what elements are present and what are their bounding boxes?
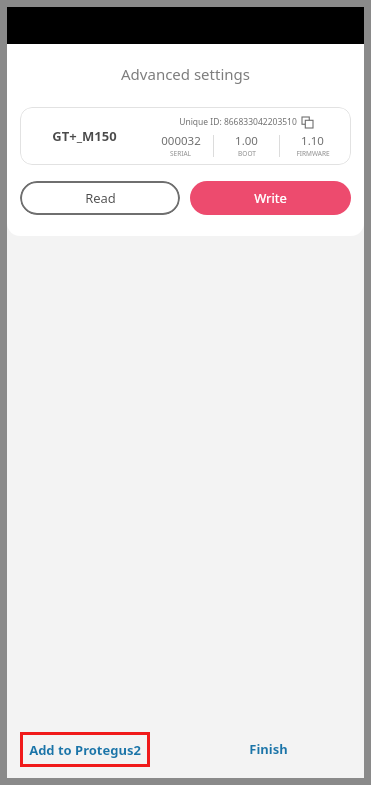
staticText: Unique ID: 866833042203510 [179, 116, 297, 128]
staticText: 000032 [161, 133, 201, 149]
staticText: BOOT [238, 149, 256, 158]
button[interactable]: Add to Protegus2 [20, 732, 150, 767]
staticText: Finish [249, 740, 288, 758]
staticText: Add to Protegus2 [29, 741, 141, 759]
staticText: SERIAL [170, 149, 191, 158]
staticText: 1.00 [235, 133, 258, 149]
staticText: GT+_M150 [52, 127, 117, 145]
staticText: Advanced settings [121, 64, 250, 84]
staticText: Write [254, 189, 287, 207]
button[interactable]: Finish [241, 732, 296, 766]
button[interactable]: Copy unique ID [300, 115, 314, 129]
staticText: 1.10 [301, 133, 324, 149]
staticText: Read [85, 189, 116, 207]
button[interactable]: Read [20, 181, 180, 215]
staticText: FIRMWARE [296, 149, 330, 158]
button[interactable]: GT+_M150 [20, 107, 351, 165]
button[interactable]: Write [190, 181, 351, 215]
